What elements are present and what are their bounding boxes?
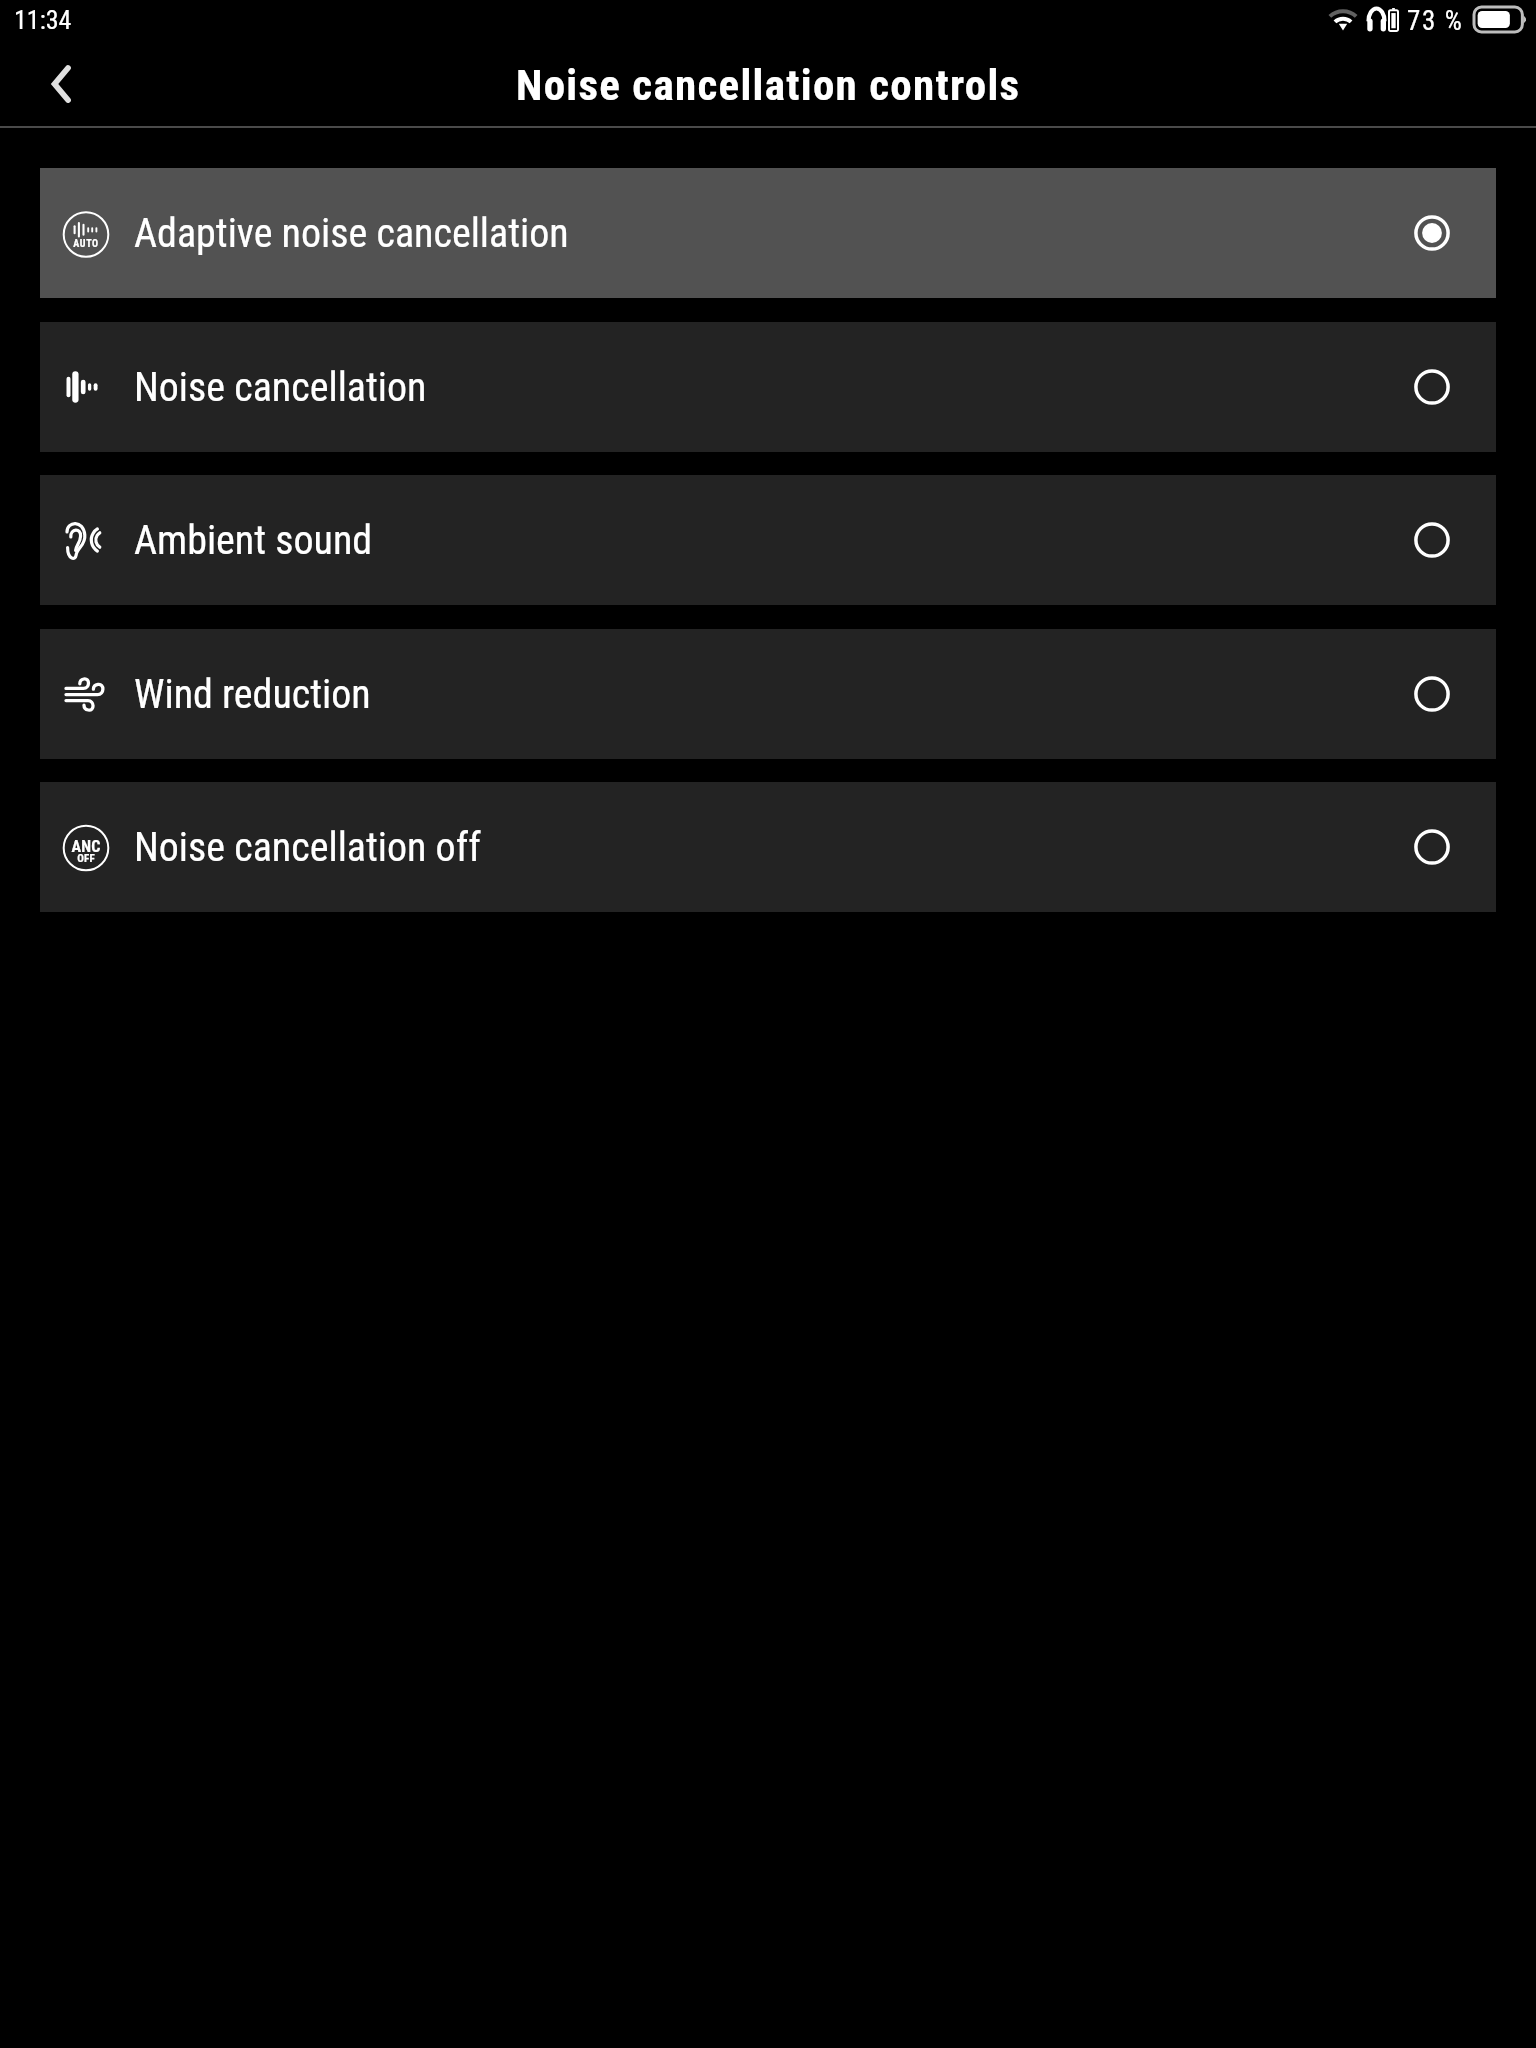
staticText: Noise cancellation <box>134 364 427 411</box>
button[interactable]: ANC <box>40 782 1496 912</box>
staticText: Noise cancellation controls <box>516 60 1021 110</box>
button[interactable]: Noise cancellation <box>40 322 1496 452</box>
button[interactable]: Back <box>12 46 108 126</box>
staticText: ANC <box>71 837 101 856</box>
button[interactable]: AUTO <box>40 168 1496 298</box>
staticText: 73 % <box>1407 5 1464 37</box>
staticText: Adaptive noise cancellation <box>134 210 569 257</box>
staticText: Wind reduction <box>134 671 371 718</box>
button[interactable]: Ambient sound <box>40 475 1496 605</box>
staticText: 11:34 <box>14 5 72 35</box>
button[interactable]: Wind reduction <box>40 629 1496 759</box>
staticText: OFF <box>77 852 95 865</box>
staticText: Ambient sound <box>134 517 373 564</box>
staticText: AUTO <box>73 238 99 250</box>
staticText: Noise cancellation off <box>134 824 482 871</box>
